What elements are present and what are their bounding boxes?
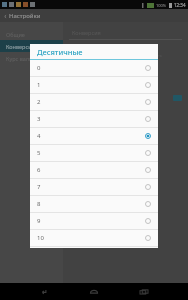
button[interactable]: 0: [30, 60, 158, 76]
staticText: 7: [37, 183, 145, 191]
staticText: Десятичные: [37, 47, 83, 57]
button[interactable]: Home: [76, 283, 112, 300]
staticText: 100%: [156, 3, 167, 8]
staticText: Личные конверсии: [73, 46, 120, 53]
staticText: 12:34: [174, 2, 186, 8]
button[interactable]: 5: [30, 145, 158, 161]
button[interactable]: Личные конверсии: [63, 44, 188, 60]
button[interactable]: 7: [30, 179, 158, 195]
button[interactable]: 9: [30, 213, 158, 229]
button[interactable]: Конверсия: [0, 40, 63, 52]
staticText: Изменить, добавить конверсию или очистит…: [73, 53, 162, 58]
button[interactable]: Recents: [126, 283, 162, 300]
staticText: 10: [37, 234, 145, 242]
staticText: 9: [37, 217, 145, 225]
staticText: 1: [37, 81, 145, 89]
button[interactable]: 8: [30, 196, 158, 212]
button[interactable]: 6: [30, 162, 158, 178]
staticText: 0: [37, 64, 145, 72]
button[interactable]: Десятичные: [63, 60, 188, 76]
staticText: Конверсия: [6, 43, 35, 50]
button[interactable]: Курс валют: [0, 52, 63, 64]
button[interactable]: Back: [26, 283, 62, 300]
button[interactable]: Разделитель: [63, 76, 188, 92]
button[interactable]: Общие: [0, 28, 63, 40]
button[interactable]: 4: [30, 128, 158, 144]
button[interactable]: 3: [30, 111, 158, 127]
staticText: 5: [37, 149, 145, 157]
staticText: Курс валют: [6, 55, 36, 62]
button[interactable]: 10: [30, 230, 158, 246]
staticText: 6: [37, 166, 145, 174]
staticText: 3: [37, 115, 145, 123]
staticText: 8: [37, 200, 145, 208]
staticText: Общие: [6, 31, 25, 38]
staticText: 4: [37, 132, 145, 140]
button[interactable]: 2: [30, 94, 158, 110]
staticText: Настройки: [9, 12, 41, 20]
button[interactable]: 1: [30, 77, 158, 93]
staticText: 2: [37, 98, 145, 106]
staticText: Конверсия: [72, 29, 101, 36]
